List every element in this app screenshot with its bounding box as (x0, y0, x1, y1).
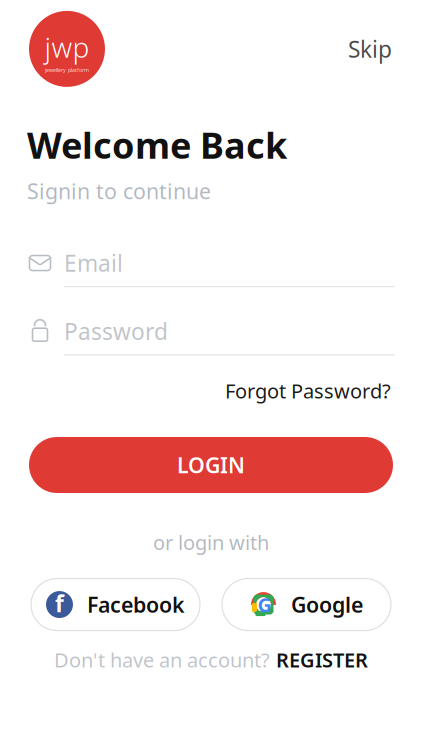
button[interactable]: Skip (338, 28, 402, 70)
staticText: jewellery platform (45, 66, 89, 73)
staticText: Password (64, 316, 168, 346)
staticText: Forgot Password? (225, 377, 391, 404)
staticText: Welcome Back (27, 121, 287, 169)
staticText: Signin to continue (27, 177, 211, 205)
staticText: jwp (44, 28, 89, 65)
button[interactable]: G (222, 578, 391, 630)
staticText: Facebook (87, 590, 185, 619)
staticText: or login with (153, 529, 269, 556)
button[interactable]: Don't have an account? (44, 638, 378, 681)
staticText: Don't have an account? (54, 646, 270, 673)
button[interactable]: f (31, 578, 200, 630)
staticText: Skip (348, 34, 392, 64)
button[interactable]: Forgot Password? (221, 371, 395, 410)
staticText: Google (291, 590, 363, 619)
button[interactable]: LOGIN (29, 437, 393, 493)
staticText: Email (64, 248, 123, 278)
staticText: f (55, 588, 64, 619)
staticText: G (257, 591, 271, 618)
staticText: REGISTER (276, 646, 368, 673)
staticText: LOGIN (177, 451, 245, 479)
